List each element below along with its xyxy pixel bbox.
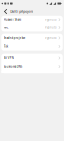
staticText: NFC bbox=[4, 26, 9, 29]
staticText: Vypnuto bbox=[45, 36, 57, 40]
staticText: Vypnuto bbox=[45, 26, 57, 29]
staticText: Síť VPN bbox=[4, 56, 14, 60]
staticText: Tisk bbox=[4, 45, 8, 48]
staticText: Snadná projekce bbox=[4, 36, 26, 40]
button[interactable]: Soukromá DNS bbox=[1, 62, 63, 71]
button[interactable]: Huawei Share bbox=[1, 16, 63, 24]
button[interactable]: NFC bbox=[1, 24, 63, 31]
button[interactable]: Back bbox=[0, 7, 10, 16]
button[interactable]: Tisk bbox=[1, 42, 63, 51]
staticText: Vypnuto bbox=[45, 18, 57, 21]
button[interactable]: Síť VPN bbox=[1, 54, 63, 62]
staticText: Huawei Share bbox=[4, 18, 22, 21]
staticText: Soukromá DNS bbox=[4, 65, 22, 68]
staticText: Další připojení bbox=[10, 9, 33, 14]
button[interactable]: Snadná projekce bbox=[1, 34, 63, 42]
